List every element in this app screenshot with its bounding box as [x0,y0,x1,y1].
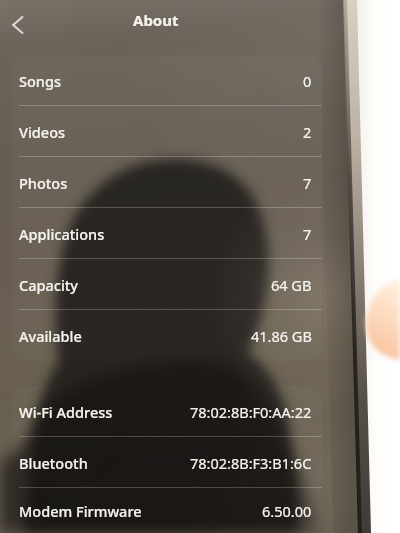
button[interactable]: Videos [12,106,322,157]
button[interactable]: Bluetooth [12,437,322,488]
staticText: Videos [19,122,66,142]
button[interactable]: Available [12,310,322,361]
button[interactable] [12,386,322,437]
staticText: 6.50.00 [262,501,312,521]
button[interactable]: Applications [12,208,322,259]
button[interactable] [12,106,322,157]
button[interactable] [12,55,322,106]
staticText: About [133,10,179,30]
staticText: Capacity [19,275,79,295]
staticText: 7 [303,173,312,193]
staticText: 64 GB [271,275,312,295]
staticText: 7 [303,224,312,244]
button[interactable]: Back [0,7,36,43]
button[interactable]: Wi-Fi Address [12,386,322,437]
button[interactable]: Modem Firmware [12,488,322,533]
button[interactable] [12,488,322,533]
staticText: Modem Firmware [19,501,142,521]
staticText: 0 [303,71,312,91]
button[interactable] [12,157,322,208]
button[interactable] [12,310,322,361]
button[interactable]: Capacity [12,259,322,310]
staticText: Songs [19,71,61,91]
staticText: 78:02:8B:F3:B1:6C [190,453,312,473]
button[interactable]: Photos [12,157,322,208]
button[interactable] [12,437,322,488]
staticText: 41.86 GB [251,326,312,346]
staticText: Photos [19,173,68,193]
button[interactable] [12,259,322,310]
staticText: 78:02:8B:F0:AA:22 [190,402,312,422]
staticText: 2 [303,122,312,142]
staticText: Wi-Fi Address [19,402,113,422]
staticText: Available [19,326,82,346]
staticText: Applications [19,224,105,244]
button[interactable] [12,208,322,259]
button[interactable]: Songs [12,55,322,106]
staticText: Bluetooth [19,453,88,473]
